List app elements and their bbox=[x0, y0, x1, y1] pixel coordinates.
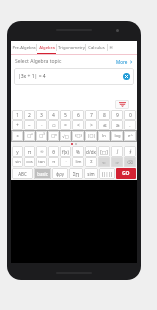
button[interactable]: ABC bbox=[12, 168, 33, 179]
button[interactable]: · bbox=[36, 120, 47, 130]
staticText: d/dx bbox=[86, 149, 96, 155]
staticText: |□| bbox=[87, 133, 96, 139]
button[interactable]: Clear bbox=[123, 73, 130, 80]
staticText: · bbox=[65, 159, 67, 165]
button[interactable]: = bbox=[60, 120, 71, 130]
staticText: 1 bbox=[16, 112, 19, 119]
button[interactable]: |□| bbox=[85, 131, 97, 141]
staticText: π bbox=[28, 149, 31, 155]
button[interactable]: φργ bbox=[52, 168, 68, 179]
staticText: Σ∏ bbox=[73, 171, 79, 177]
button[interactable]: (□) bbox=[72, 131, 84, 141]
staticText: 2 bbox=[28, 112, 31, 119]
staticText: % bbox=[76, 149, 80, 155]
button[interactable]: □² bbox=[24, 131, 35, 141]
button[interactable]: ∫ bbox=[111, 146, 123, 157]
button[interactable]: (|||) bbox=[99, 168, 115, 179]
staticText: 7 bbox=[90, 112, 93, 119]
button[interactable]: π bbox=[24, 146, 35, 157]
staticText: − bbox=[28, 122, 31, 129]
staticText: 9 bbox=[116, 112, 119, 119]
button[interactable]: Pre-Algebra bbox=[11, 41, 36, 54]
button[interactable]: 3 bbox=[36, 110, 47, 120]
staticText: 4 bbox=[52, 112, 55, 119]
button[interactable]: 7 bbox=[85, 110, 97, 120]
staticText: y bbox=[16, 149, 19, 155]
button[interactable]: H bbox=[108, 41, 114, 54]
button[interactable]: ⌫ bbox=[124, 157, 136, 167]
button[interactable]: · bbox=[60, 157, 71, 167]
button[interactable]: ≤ bbox=[98, 120, 110, 130]
button[interactable]: ∞ bbox=[36, 146, 47, 157]
button[interactable]: ⇒ bbox=[111, 157, 123, 167]
button[interactable]: tan bbox=[36, 157, 47, 167]
button[interactable]: Σ∏ bbox=[69, 168, 83, 179]
staticText: ∮ bbox=[129, 149, 132, 154]
button[interactable]: 9 bbox=[111, 110, 123, 120]
button[interactable]: log bbox=[111, 131, 123, 141]
staticText: Algebra bbox=[39, 45, 55, 51]
button[interactable]: lim bbox=[72, 157, 84, 167]
button[interactable]: − bbox=[24, 120, 35, 130]
button[interactable]: > bbox=[85, 120, 97, 130]
button[interactable]: 0 bbox=[124, 110, 136, 120]
staticText: □² bbox=[27, 133, 33, 139]
button[interactable]: 8 bbox=[98, 110, 110, 120]
button[interactable]: 6 bbox=[72, 110, 84, 120]
button[interactable]: 4 bbox=[48, 110, 59, 120]
button[interactable]: Calculus bbox=[86, 41, 107, 54]
button[interactable]: |3x + 1| = 4 bbox=[14, 68, 134, 85]
button[interactable]: d/dx bbox=[85, 146, 97, 157]
staticText: H bbox=[109, 45, 113, 51]
staticText: [□] bbox=[100, 149, 108, 155]
button[interactable]: Hide keyboard bbox=[115, 100, 129, 109]
staticText: Trigonometry bbox=[58, 45, 85, 51]
staticText: f(x) bbox=[62, 149, 69, 155]
button[interactable]: y bbox=[12, 146, 23, 157]
staticText: ⇒ bbox=[115, 160, 119, 165]
staticText: sim bbox=[87, 171, 95, 177]
button[interactable]: x bbox=[12, 131, 23, 141]
staticText: + bbox=[16, 122, 19, 129]
button[interactable]: ∮ bbox=[124, 146, 136, 157]
staticText: □ⁿ bbox=[51, 133, 57, 139]
button[interactable]: 5 bbox=[60, 110, 71, 120]
staticText: ≤ bbox=[102, 122, 107, 128]
button[interactable]: GO bbox=[116, 168, 136, 179]
button[interactable]: √□ bbox=[60, 131, 71, 141]
button[interactable]: basic bbox=[34, 168, 51, 179]
button[interactable]: θ bbox=[48, 146, 59, 157]
staticText: > bbox=[90, 122, 93, 129]
staticText: ∞ bbox=[40, 149, 44, 154]
staticText: 8 bbox=[103, 112, 106, 119]
button[interactable]: Algebra bbox=[37, 41, 56, 54]
button[interactable]: [□] bbox=[98, 146, 110, 157]
button[interactable]: More bbox=[116, 59, 133, 65]
staticText: GO bbox=[122, 170, 130, 177]
button[interactable]: e^ bbox=[124, 131, 136, 141]
button[interactable]: ▫ bbox=[48, 120, 59, 130]
staticText: □³ bbox=[39, 133, 45, 139]
button[interactable]: □³ bbox=[36, 131, 47, 141]
button[interactable]: cos bbox=[24, 157, 35, 167]
button[interactable]: □ⁿ bbox=[48, 131, 59, 141]
button[interactable]: 2 bbox=[24, 110, 35, 120]
staticText: 6 bbox=[77, 112, 80, 119]
button[interactable]: π bbox=[48, 157, 59, 167]
button[interactable]: Trigonometry bbox=[57, 41, 85, 54]
staticText: |3x + 1| = 4 bbox=[18, 73, 46, 80]
button[interactable]: f(x) bbox=[60, 146, 71, 157]
button[interactable]: ≥ bbox=[111, 120, 123, 130]
button[interactable]: 1 bbox=[12, 110, 23, 120]
button[interactable]: sim bbox=[84, 168, 98, 179]
button[interactable]: ln bbox=[98, 131, 110, 141]
staticText: (□) bbox=[75, 133, 82, 139]
button[interactable]: sin bbox=[12, 157, 23, 167]
button[interactable]: + bbox=[12, 120, 23, 130]
staticText: basic bbox=[37, 171, 48, 177]
button[interactable]: Σ bbox=[85, 157, 97, 167]
button[interactable]: . bbox=[124, 120, 136, 130]
button[interactable]: ⇐ bbox=[98, 157, 110, 167]
button[interactable]: % bbox=[72, 146, 84, 157]
button[interactable]: < bbox=[72, 120, 84, 130]
